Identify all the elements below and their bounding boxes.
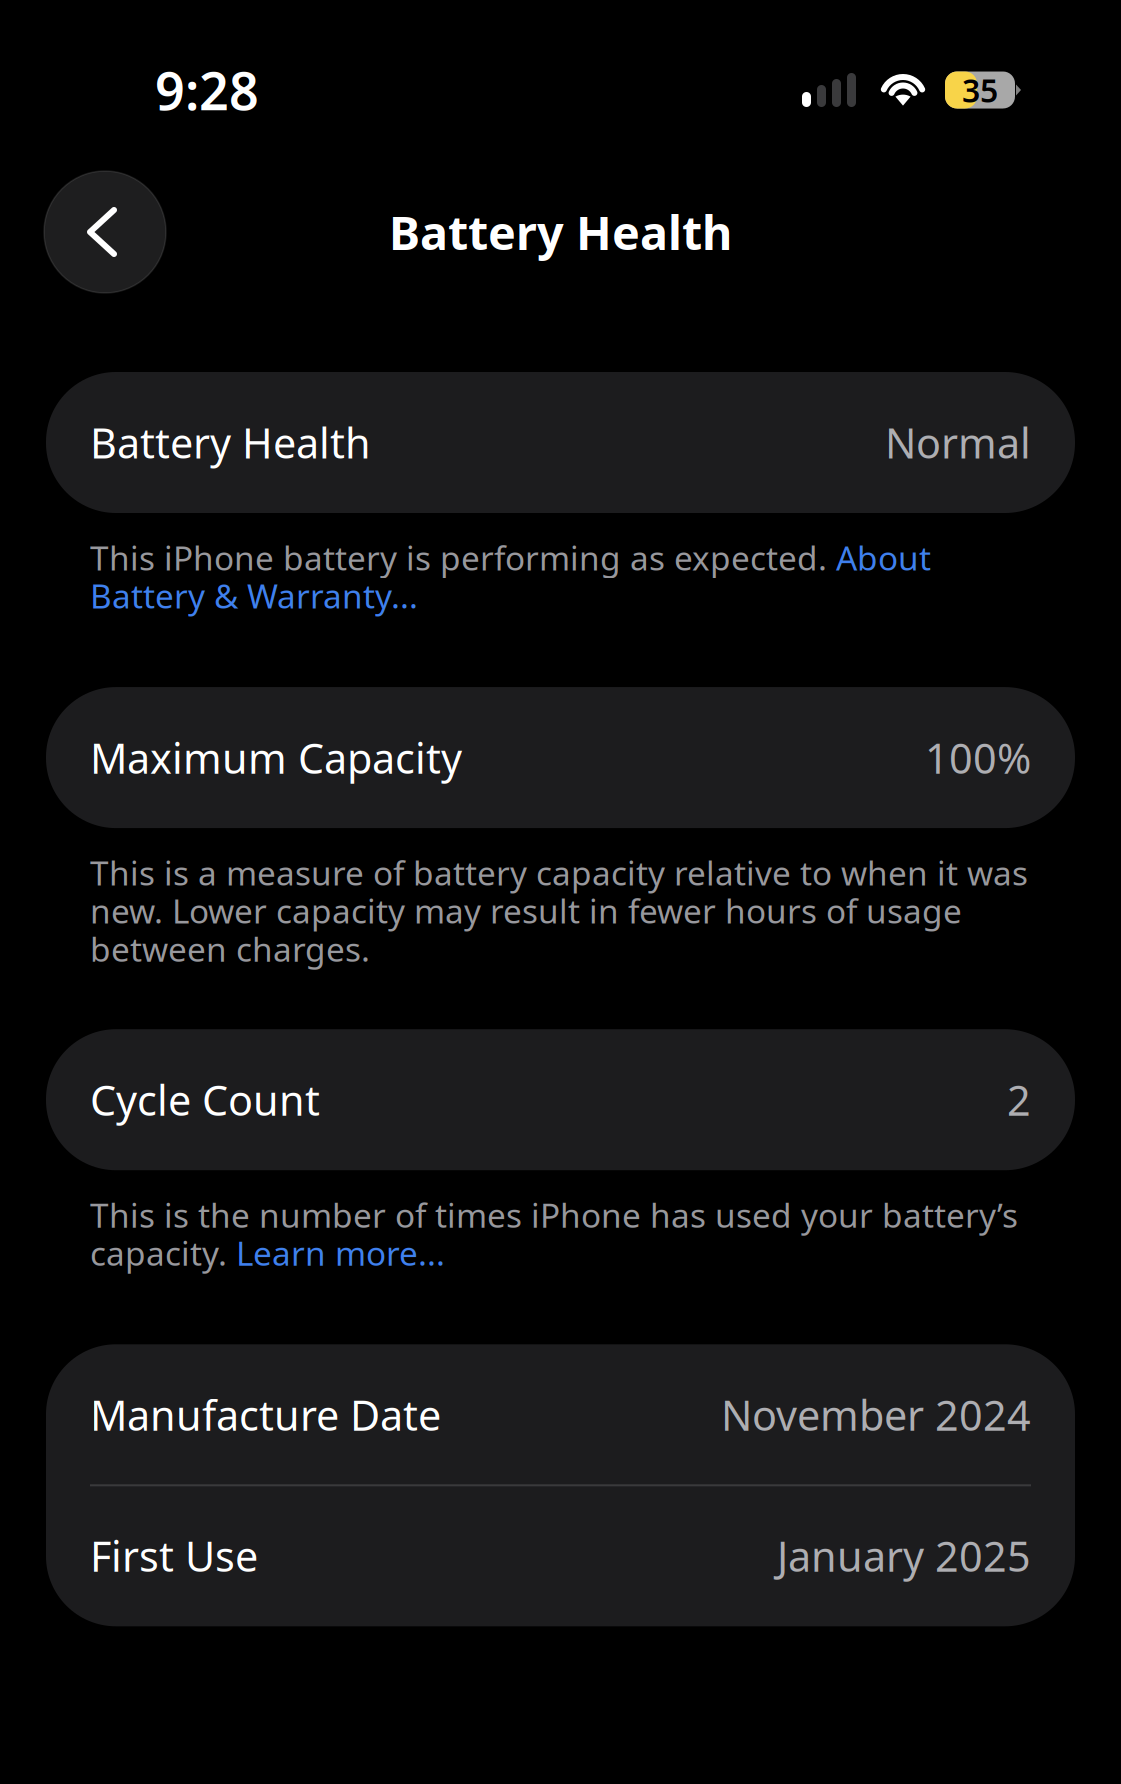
- staticText: Learn more...: [236, 1233, 445, 1272]
- staticText: This iPhone battery is performing as exp…: [90, 538, 836, 577]
- staticText: January 2025: [777, 1528, 1031, 1584]
- staticText: Battery & Warranty...: [90, 576, 418, 615]
- staticText: Battery Health: [90, 414, 371, 471]
- staticText: 9:28: [155, 55, 259, 125]
- staticText: November 2024: [721, 1387, 1031, 1443]
- staticText: Battery Health: [389, 201, 732, 263]
- button[interactable]: Learn more...: [236, 1233, 445, 1272]
- button[interactable]: Manufacture Date: [46, 1344, 1075, 1485]
- staticText: Manufacture Date: [90, 1387, 441, 1443]
- staticText: capacity.: [90, 1233, 236, 1272]
- staticText: 35: [962, 69, 998, 111]
- staticText: new. Lower capacity may result in fewer …: [90, 891, 962, 930]
- staticText: Maximum Capacity: [90, 729, 462, 786]
- staticText: 100%: [925, 729, 1031, 786]
- staticText: Cycle Count: [90, 1072, 320, 1128]
- staticText: This is the number of times iPhone has u…: [90, 1195, 1018, 1234]
- button[interactable]: Back: [44, 171, 166, 293]
- staticText: Normal: [885, 414, 1031, 471]
- button[interactable]: Maximum Capacity: [46, 687, 1075, 828]
- button[interactable]: Cycle Count: [46, 1029, 1075, 1170]
- button[interactable]: Battery Health: [46, 372, 1075, 513]
- button[interactable]: Battery & Warranty...: [90, 576, 418, 615]
- staticText: This is a measure of battery capacity re…: [90, 853, 1028, 892]
- button[interactable]: First Use: [46, 1485, 1075, 1626]
- button[interactable]: About: [836, 538, 931, 577]
- staticText: About: [836, 538, 931, 577]
- staticText: 2: [1007, 1072, 1031, 1128]
- staticText: First Use: [90, 1528, 258, 1584]
- staticText: between charges.: [90, 929, 370, 968]
